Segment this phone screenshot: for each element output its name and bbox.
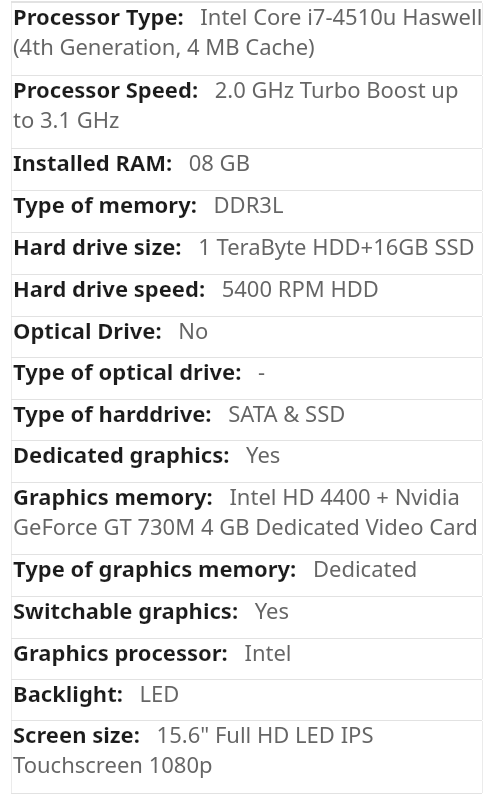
staticText: Processor Speed: 2.0 GHz Turbo Boost up … xyxy=(13,74,484,135)
staticText: Type of optical drive: - xyxy=(13,356,266,386)
button[interactable]: Type of graphics memory: Dedicated xyxy=(11,555,490,596)
button[interactable]: Processor Speed: 2.0 GHz Turbo Boost up … xyxy=(11,76,490,148)
staticText: Hard drive speed: 5400 RPM HDD xyxy=(13,273,379,303)
button[interactable]: Type of memory: DDR3L xyxy=(11,191,490,232)
button[interactable]: Hard drive speed: 5400 RPM HDD xyxy=(11,275,490,316)
button[interactable]: Optical Drive: No xyxy=(11,317,490,357)
button[interactable]: Backlight: LED xyxy=(11,680,490,720)
button[interactable]: Type of optical drive: - xyxy=(11,358,490,399)
staticText: Graphics memory: Intel HD 4400 + Nvidia … xyxy=(13,481,484,542)
staticText: Type of graphics memory: Dedicated xyxy=(13,553,418,583)
button[interactable]: Switchable graphics: Yes xyxy=(11,597,490,638)
button[interactable]: Screen size: 15.6" Full HD LED IPS Touch… xyxy=(11,721,490,793)
staticText: Installed RAM: 08 GB xyxy=(13,147,250,177)
staticText: Hard drive size: 1 TeraByte HDD+16GB SSD xyxy=(13,231,475,261)
button[interactable]: Hard drive size: 1 TeraByte HDD+16GB SSD xyxy=(11,233,490,274)
button[interactable]: Dedicated graphics: Yes xyxy=(11,441,490,482)
staticText: Processor Type: Intel Core i7-4510u Hasw… xyxy=(13,1,484,62)
button[interactable]: Processor Type: Intel Core i7-4510u Hasw… xyxy=(11,3,490,75)
staticText: Screen size: 15.6" Full HD LED IPS Touch… xyxy=(13,719,484,780)
staticText: Backlight: LED xyxy=(13,678,180,708)
button[interactable]: Installed RAM: 08 GB xyxy=(11,149,490,190)
button[interactable]: Graphics processor: Intel xyxy=(11,639,490,679)
staticText: Graphics processor: Intel xyxy=(13,637,292,667)
button[interactable]: Type of harddrive: SATA & SSD xyxy=(11,400,490,440)
staticText: Type of memory: DDR3L xyxy=(13,189,284,219)
staticText: Dedicated graphics: Yes xyxy=(13,439,281,469)
staticText: Type of harddrive: SATA & SSD xyxy=(13,398,346,428)
staticText: Switchable graphics: Yes xyxy=(13,595,289,625)
staticText: Optical Drive: No xyxy=(13,315,209,345)
button[interactable]: Graphics memory: Intel HD 4400 + Nvidia … xyxy=(11,483,490,554)
